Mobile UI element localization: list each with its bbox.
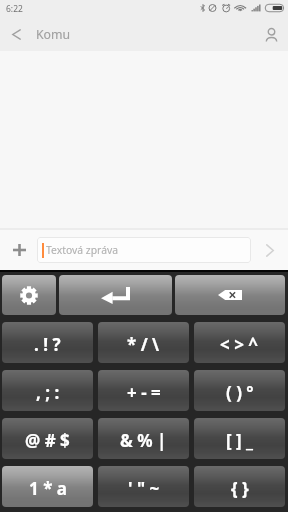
- button[interactable]: + - =: [98, 370, 189, 411]
- button[interactable]: ' " ~: [98, 466, 189, 507]
- button[interactable]: Send: [251, 232, 288, 269]
- staticText: 6:22: [6, 3, 23, 15]
- staticText: 1 * a: [29, 477, 67, 500]
- staticText: , ; :: [36, 381, 60, 404]
- staticText: [ ] _: [226, 429, 254, 452]
- button[interactable]: . ! ?: [2, 322, 93, 363]
- button[interactable]: Textová zpráva: [37, 237, 251, 263]
- button[interactable]: Add attachment: [0, 231, 38, 269]
- button[interactable]: [ ] _: [194, 418, 285, 459]
- staticText: * / \: [127, 333, 160, 356]
- button[interactable]: Contacts: [255, 18, 288, 51]
- button[interactable]: Backspace: [175, 275, 285, 315]
- staticText: . ! ?: [34, 333, 61, 356]
- staticText: < > ^: [220, 333, 259, 356]
- staticText: ( ) °: [226, 381, 254, 404]
- button[interactable]: { }: [194, 466, 285, 507]
- staticText: & % |: [120, 429, 167, 452]
- staticText: + - =: [127, 381, 161, 404]
- staticText: { }: [231, 477, 249, 500]
- staticText: Komu: [36, 26, 71, 43]
- button[interactable]: Settings: [2, 275, 56, 315]
- button[interactable]: & % |: [98, 418, 189, 459]
- staticText: @ # $: [25, 429, 70, 452]
- button[interactable]: , ; :: [2, 370, 93, 411]
- button[interactable]: Enter: [59, 275, 172, 315]
- button[interactable]: ( ) °: [194, 370, 285, 411]
- staticText: ' " ~: [128, 477, 160, 500]
- button[interactable]: @ # $: [2, 418, 93, 459]
- button[interactable]: < > ^: [194, 322, 285, 363]
- staticText: Textová zpráva: [46, 243, 119, 257]
- button[interactable]: 1 * a: [2, 466, 93, 507]
- button[interactable]: Back: [0, 18, 33, 51]
- button[interactable]: * / \: [98, 322, 189, 363]
